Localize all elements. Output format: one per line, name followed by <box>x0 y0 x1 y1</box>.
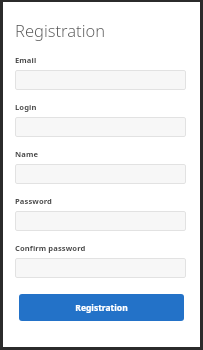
staticText: Password <box>15 196 52 206</box>
button[interactable] <box>15 258 186 278</box>
button[interactable]: Registration <box>19 294 184 321</box>
staticText: Login <box>15 102 37 112</box>
button[interactable] <box>15 70 186 90</box>
staticText: Email <box>15 55 37 65</box>
button[interactable] <box>15 211 186 231</box>
staticText: Confirm password <box>15 243 86 253</box>
staticText: Registration <box>15 19 106 41</box>
button[interactable] <box>15 117 186 137</box>
staticText: Name <box>15 149 39 159</box>
button[interactable] <box>15 164 186 184</box>
staticText: Registration <box>75 302 128 314</box>
